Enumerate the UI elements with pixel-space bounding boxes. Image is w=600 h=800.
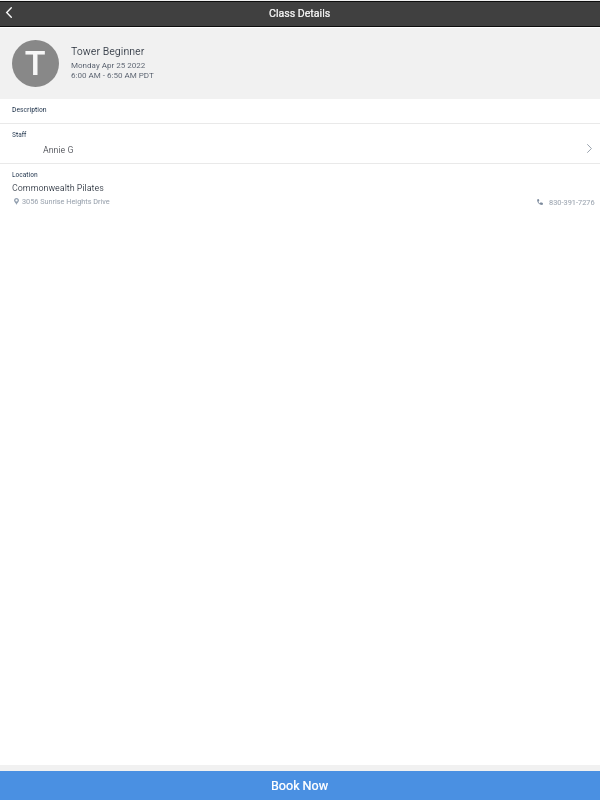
staticText: Book Now (271, 778, 329, 793)
staticText: 830-391-7276 (549, 198, 595, 207)
button[interactable]: Annie G (0, 124, 600, 163)
staticText: Annie G (43, 145, 74, 155)
staticText: Staff (12, 131, 27, 139)
staticText: Description (12, 106, 47, 114)
button[interactable]: 3056 Sunrise Heights Drive (12, 197, 110, 208)
button[interactable]: 830-391-7276 (537, 197, 595, 208)
staticText: T (25, 44, 46, 83)
staticText: 6:00 AM - 6:50 AM PDT (71, 71, 154, 80)
staticText: 3056 Sunrise Heights Drive (22, 197, 110, 206)
staticText: Tower Beginner (71, 45, 145, 57)
staticText: Commonwealth Pilates (12, 183, 104, 193)
staticText: Class Details (269, 7, 331, 19)
staticText: Location (12, 171, 38, 179)
button[interactable]: Back (0, 2, 26, 26)
staticText: Monday Apr 25 2022 (71, 61, 146, 70)
button[interactable]: Book Now (0, 771, 600, 800)
